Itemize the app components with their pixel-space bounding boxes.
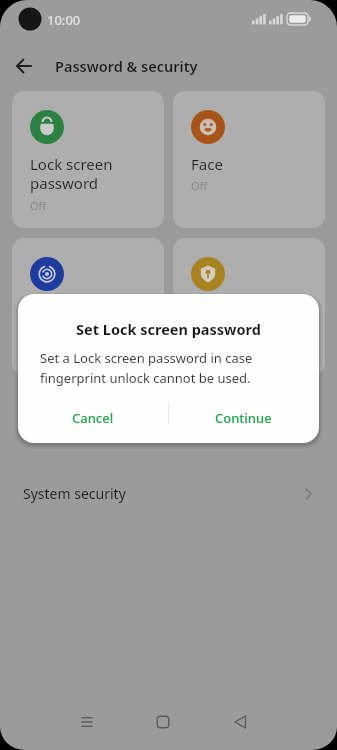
staticText: Cancel [72, 409, 114, 427]
button[interactable]: System security [0, 467, 337, 515]
button[interactable]: Cancel [18, 398, 168, 438]
staticText: Off [191, 178, 208, 193]
button[interactable]: Continue [168, 398, 319, 438]
staticText: Lock screen password [30, 154, 113, 194]
staticText: Continue [215, 409, 272, 427]
button[interactable] [147, 706, 179, 738]
staticText: 10:00 [47, 11, 81, 29]
staticText: Set a Lock screen password in case finge… [40, 349, 253, 387]
button[interactable]: Face [173, 91, 325, 228]
staticText: Set Lock screen password [18, 319, 319, 339]
staticText: Password & security [55, 56, 198, 76]
button[interactable] [71, 706, 103, 738]
button[interactable]: Privacy [173, 238, 325, 375]
button[interactable]: Lock screen password [12, 91, 164, 228]
staticText: System security [23, 484, 126, 503]
button[interactable]: Password & security [0, 48, 337, 84]
staticText: Off [30, 198, 47, 213]
button[interactable] [224, 706, 256, 738]
staticText: Face [191, 154, 223, 174]
staticText: Off [191, 325, 208, 340]
button[interactable]: Fingerprint [12, 238, 164, 375]
